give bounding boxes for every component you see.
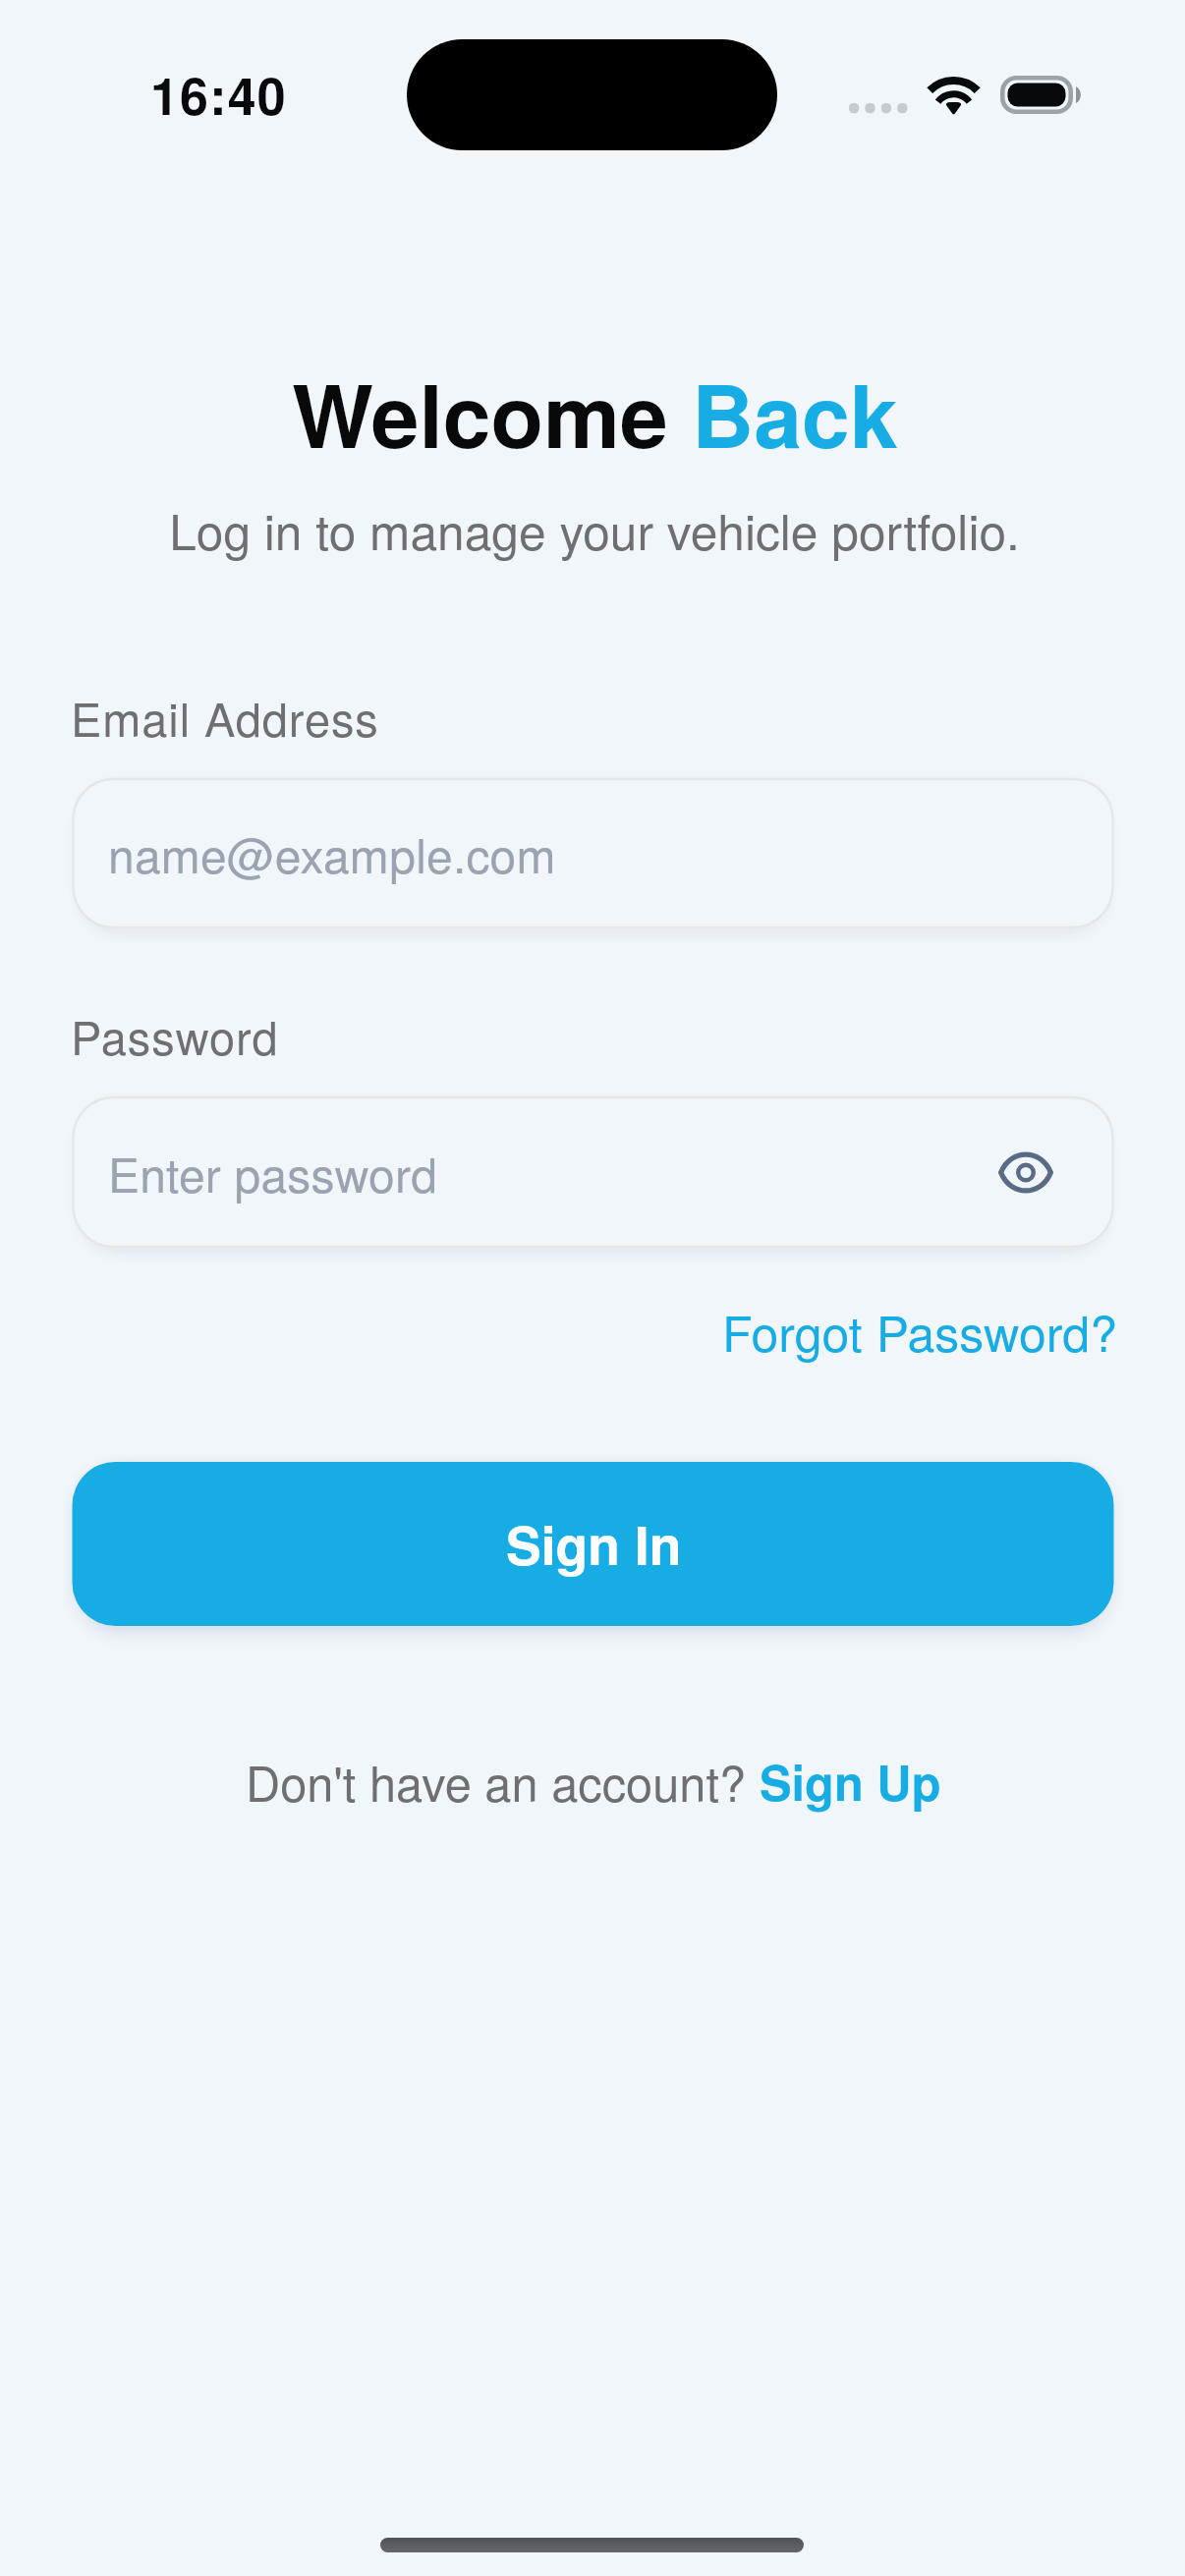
button[interactable]: Sign In xyxy=(73,1462,1114,1626)
button[interactable]: name@example.com xyxy=(73,778,1114,928)
staticText: Email Address xyxy=(71,684,379,750)
staticText: Sign In xyxy=(506,1506,682,1582)
staticText: name@example.com xyxy=(108,819,556,887)
button[interactable]: Don't have an account? xyxy=(246,1747,941,1816)
button[interactable]: Show password xyxy=(991,1144,1060,1201)
staticText: Log in to manage your vehicle portfolio. xyxy=(169,494,1020,564)
staticText: Enter password xyxy=(108,1139,438,1206)
staticText: Sign Up xyxy=(760,1747,941,1816)
staticText: Password xyxy=(71,1002,279,1068)
button[interactable]: Enter password xyxy=(73,1096,1114,1248)
staticText: Welcome Back xyxy=(292,351,898,474)
button[interactable]: Forgot Password? xyxy=(718,1278,1121,1384)
staticText: Don't have an account? xyxy=(246,1747,760,1816)
staticText: Forgot Password? xyxy=(722,1296,1117,1367)
staticText: 16:40 xyxy=(150,57,287,130)
